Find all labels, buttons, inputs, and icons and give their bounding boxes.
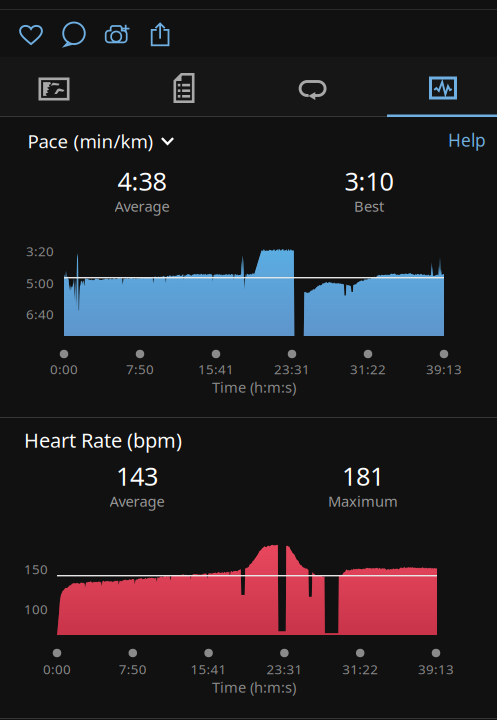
staticText: 181 [342, 459, 384, 493]
button[interactable]: Splits [122, 58, 246, 117]
staticText: Time (h:m:s) [212, 377, 296, 397]
staticText: 15:41 [191, 660, 227, 678]
staticText: 31:22 [342, 660, 378, 678]
staticText: 15:41 [198, 360, 234, 378]
button[interactable]: Pace (min/km) [23, 124, 178, 158]
staticText: Average [114, 196, 169, 216]
staticText: Maximum [328, 491, 398, 511]
staticText: 0:00 [43, 660, 71, 678]
button[interactable]: Map [0, 59, 116, 118]
button[interactable]: Help [440, 123, 494, 156]
button[interactable]: Add photo [104, 24, 129, 45]
staticText: 7:50 [126, 360, 154, 378]
staticText: 39:13 [418, 660, 454, 678]
staticText: Pace (min/km) [27, 129, 153, 153]
staticText: Best [354, 196, 384, 216]
button[interactable]: Like [19, 23, 43, 45]
staticText: 6:40 [26, 305, 54, 323]
button[interactable]: Laps [251, 60, 375, 119]
button[interactable]: Comment [61, 22, 86, 46]
staticText: 5:00 [26, 274, 54, 292]
staticText: 39:13 [426, 360, 462, 378]
staticText: 7:50 [119, 660, 147, 678]
staticText: 4:38 [117, 164, 166, 198]
staticText: 100 [24, 600, 48, 618]
staticText: 3:10 [344, 164, 393, 198]
staticText: 143 [116, 459, 158, 493]
staticText: 150 [24, 560, 48, 578]
staticText: 23:31 [266, 660, 302, 678]
staticText: 23:31 [274, 360, 310, 378]
staticText: 0:00 [50, 360, 78, 378]
button[interactable]: Share [150, 22, 169, 46]
staticText: Time (h:m:s) [212, 677, 296, 697]
button[interactable]: Analysis [381, 58, 497, 117]
staticText: 3:20 [26, 242, 54, 260]
staticText: Heart Rate (bpm) [24, 427, 182, 453]
staticText: Average [109, 491, 164, 511]
staticText: Help [448, 128, 486, 151]
staticText: 31:22 [350, 360, 386, 378]
